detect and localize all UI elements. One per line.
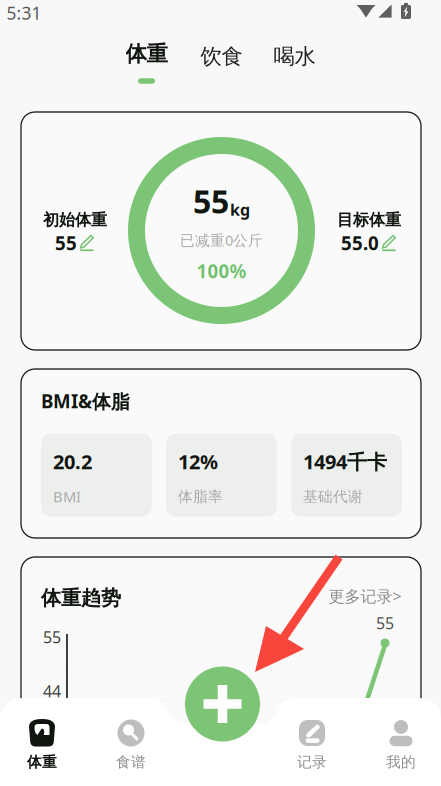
staticText: 55 [193, 180, 229, 222]
button[interactable]: Add record [185, 666, 260, 741]
staticText: 饮食 [200, 43, 242, 70]
staticText: 喝水 [273, 43, 315, 70]
staticText: 食谱 [116, 753, 146, 771]
staticText: 5:31 [6, 1, 41, 24]
staticText: BMI [53, 487, 81, 506]
button[interactable]: 目标体重 [317, 206, 421, 258]
staticText: 初始体重 [43, 210, 107, 230]
staticText: 55 [376, 612, 394, 634]
button[interactable]: 食谱 [89, 714, 173, 782]
button[interactable]: 初始体重 [23, 206, 127, 258]
button[interactable]: 喝水 [256, 29, 332, 83]
staticText: 12% [178, 448, 218, 475]
staticText: 55 [43, 626, 61, 648]
button[interactable]: 饮食 [183, 29, 259, 83]
staticText: 44 [43, 680, 61, 702]
staticText: 目标体重 [337, 210, 401, 230]
staticText: 体重趋势 [41, 586, 121, 610]
staticText: 体脂率 [178, 487, 223, 505]
staticText: 20.2 [53, 448, 92, 475]
staticText: 55.0 [341, 231, 379, 255]
staticText: 记录 [297, 753, 327, 771]
button[interactable]: 记录 [270, 714, 354, 782]
staticText: kg [230, 199, 250, 220]
staticText: 1494千卡 [303, 448, 387, 475]
staticText: 体重 [125, 41, 167, 67]
staticText: 我的 [386, 753, 416, 771]
staticText: 基础代谢 [303, 487, 363, 505]
staticText: BMI&体脂 [41, 389, 130, 413]
button[interactable]: 更多记录> [325, 584, 405, 608]
button[interactable]: 我的 [359, 714, 441, 782]
staticText: 更多记录> [328, 585, 401, 607]
staticText: 已减重0公斤 [180, 230, 263, 250]
button[interactable]: 体重 [0, 714, 84, 782]
staticText: 100% [196, 259, 246, 283]
staticText: 体重 [27, 753, 57, 771]
staticText: 55 [55, 231, 77, 255]
button[interactable]: 体重 [108, 37, 184, 91]
